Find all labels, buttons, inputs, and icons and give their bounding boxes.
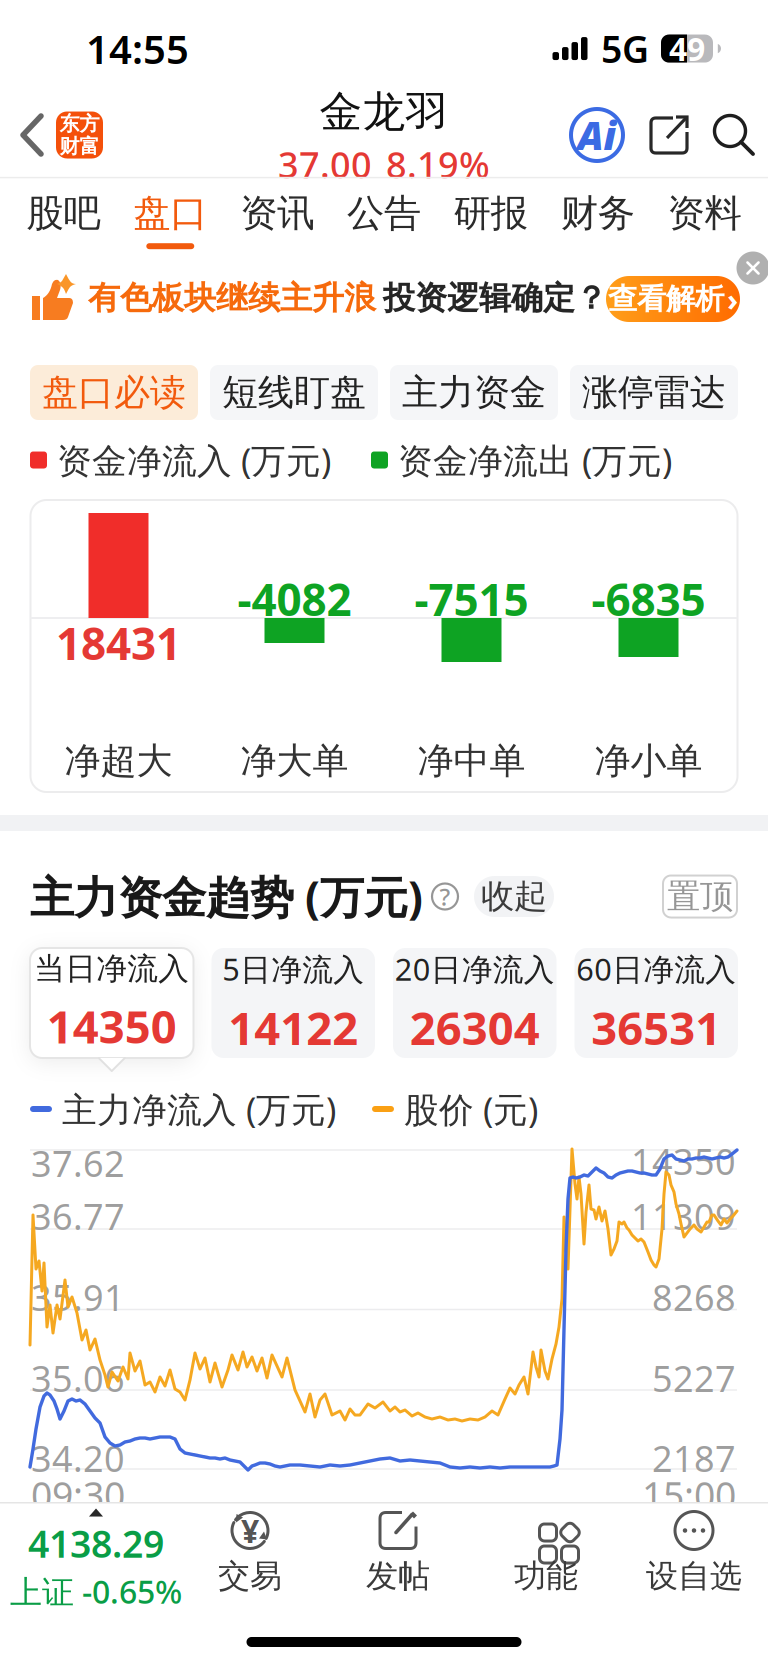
staticText: 11309 bbox=[631, 1192, 736, 1240]
button[interactable]: 置顶 bbox=[663, 875, 737, 917]
button[interactable]: 股吧 bbox=[10, 190, 117, 249]
staticText: 5227 bbox=[652, 1354, 736, 1402]
button[interactable]: 资料 bbox=[651, 190, 758, 249]
staticText: 当日净流入 bbox=[34, 950, 189, 988]
staticText: 财务 bbox=[561, 190, 635, 236]
button[interactable]: 财务 bbox=[544, 190, 651, 249]
button[interactable]: 东方财富 bbox=[56, 111, 103, 158]
staticText: 交易 bbox=[218, 1556, 282, 1596]
staticText: 净大单 bbox=[240, 739, 348, 783]
staticText: 资金净流入 (万元) bbox=[57, 437, 331, 483]
staticText: 14:55 bbox=[86, 22, 189, 75]
button[interactable]: 功能 bbox=[472, 1508, 620, 1596]
staticText: 26304 bbox=[410, 997, 540, 1057]
button[interactable]: 盘口 bbox=[117, 190, 224, 249]
button[interactable]: Close bbox=[736, 251, 768, 284]
button[interactable]: 查看解析 bbox=[606, 276, 740, 322]
staticText: 净小单 bbox=[594, 739, 702, 783]
button[interactable]: 上证指数 bbox=[0, 1508, 176, 1613]
staticText: 金龙羽 bbox=[319, 86, 448, 138]
staticText: 盘口必读 bbox=[42, 370, 186, 415]
staticText: 盘口 bbox=[133, 190, 207, 236]
staticText: 49 bbox=[669, 27, 705, 70]
staticText: 4138.29 bbox=[28, 1518, 164, 1568]
button[interactable]: Back bbox=[0, 113, 56, 157]
staticText: 股价 (元) bbox=[404, 1086, 538, 1132]
staticText: 资金净流出 (万元) bbox=[398, 437, 672, 483]
staticText: 36531 bbox=[591, 997, 721, 1057]
button[interactable]: 短线盯盘 bbox=[210, 365, 378, 420]
button[interactable]: 20日净流入 bbox=[393, 948, 556, 1058]
staticText: 35.06 bbox=[31, 1354, 125, 1402]
staticText: -6835 bbox=[591, 570, 705, 628]
button[interactable]: 当日净流入 bbox=[30, 948, 193, 1058]
staticText: 财富 bbox=[59, 134, 99, 159]
button[interactable]: 设自选 bbox=[620, 1508, 768, 1596]
button[interactable]: 收起 bbox=[474, 876, 554, 917]
button[interactable]: 发帖 bbox=[324, 1508, 472, 1596]
staticText: 上证 -0.65% bbox=[10, 1570, 182, 1613]
staticText: 净超大 bbox=[64, 739, 172, 783]
staticText: 投资逻辑确定？ bbox=[383, 278, 607, 318]
button[interactable]: 资讯 bbox=[224, 190, 331, 249]
button[interactable]: Ai bbox=[569, 107, 625, 163]
button[interactable]: Search bbox=[689, 112, 757, 158]
staticText: 34.20 bbox=[31, 1434, 125, 1482]
staticText: 功能 bbox=[514, 1556, 578, 1596]
staticText: 主力资金趋势 (万元) bbox=[30, 867, 423, 926]
staticText: 查看解析 bbox=[608, 281, 724, 317]
staticText: 5G bbox=[601, 24, 649, 73]
button[interactable]: 研报 bbox=[437, 190, 544, 249]
staticText: 14350 bbox=[47, 996, 177, 1056]
staticText: 资讯 bbox=[240, 190, 314, 236]
staticText: 8.19% bbox=[386, 140, 490, 188]
staticText: 36.77 bbox=[31, 1192, 125, 1240]
staticText: 37.00 bbox=[278, 140, 372, 188]
button[interactable]: 交易 bbox=[176, 1508, 324, 1596]
staticText: 35.91 bbox=[31, 1273, 125, 1321]
staticText: -4082 bbox=[237, 570, 351, 628]
staticText: 净中单 bbox=[417, 739, 525, 783]
button[interactable]: 5日净流入 bbox=[211, 948, 375, 1058]
button[interactable]: 盘口必读 bbox=[30, 365, 198, 420]
staticText: 60日净流入 bbox=[576, 948, 736, 989]
staticText: 09:30 bbox=[31, 1470, 125, 1520]
staticText: -7515 bbox=[414, 570, 528, 628]
staticText: 主力资金 bbox=[402, 370, 546, 415]
staticText: 2187 bbox=[652, 1434, 736, 1482]
staticText: 14350 bbox=[631, 1137, 736, 1185]
staticText: › bbox=[727, 279, 738, 319]
staticText: 公告 bbox=[347, 190, 421, 236]
staticText: Ai bbox=[577, 109, 616, 161]
button[interactable]: 涨停雷达 bbox=[570, 365, 738, 420]
staticText: 37.62 bbox=[31, 1139, 125, 1187]
button[interactable]: 公告 bbox=[331, 190, 437, 249]
staticText: 置顶 bbox=[667, 876, 733, 917]
staticText: 股吧 bbox=[26, 190, 100, 236]
staticText: 20日净流入 bbox=[395, 948, 555, 989]
button[interactable]: Share bbox=[625, 115, 689, 155]
staticText: 主力净流入 (万元) bbox=[62, 1086, 336, 1132]
staticText: 资料 bbox=[668, 190, 742, 236]
button[interactable]: 60日净流入 bbox=[574, 948, 738, 1058]
staticText: 东方 bbox=[59, 111, 99, 136]
staticText: 短线盯盘 bbox=[222, 370, 366, 415]
staticText: 收起 bbox=[481, 876, 547, 917]
button[interactable]: 帮助 bbox=[432, 881, 458, 912]
staticText: 5日净流入 bbox=[222, 948, 364, 989]
button[interactable]: 主力资金 bbox=[390, 365, 558, 420]
staticText: 15:00 bbox=[642, 1470, 736, 1520]
staticText: 18431 bbox=[56, 614, 181, 672]
staticText: 发帖 bbox=[366, 1556, 430, 1596]
staticText: 设自选 bbox=[646, 1556, 742, 1596]
staticText: ¥ bbox=[241, 1509, 259, 1552]
staticText: ? bbox=[439, 881, 450, 912]
staticText: 研报 bbox=[454, 190, 528, 236]
staticText: 14122 bbox=[228, 997, 358, 1057]
staticText: 涨停雷达 bbox=[582, 370, 726, 415]
staticText: 8268 bbox=[652, 1273, 736, 1321]
staticText: 有色板块继续主升浪 bbox=[88, 278, 376, 318]
